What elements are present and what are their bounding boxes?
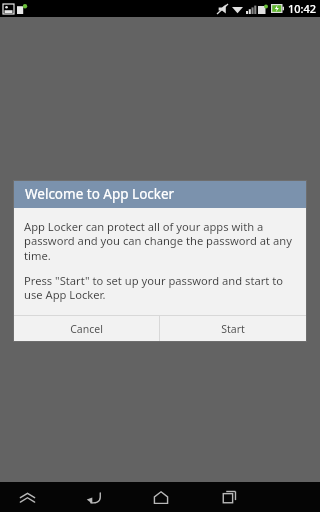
button[interactable]: Cancel [14,316,159,341]
staticText: Start [221,322,245,336]
staticText: Welcome to App Locker [25,185,175,203]
button[interactable]: Back [74,482,112,512]
button[interactable]: Home [142,482,180,512]
staticText: 10:42 [288,1,317,16]
button[interactable]: Recent apps [210,482,248,512]
button[interactable]: Menu [8,482,46,512]
button[interactable]: Start [160,316,306,341]
staticText: Press "Start" to set up your password an… [24,273,296,303]
staticText: Cancel [70,322,103,336]
staticText: App Locker can protect all of your apps … [24,219,296,264]
